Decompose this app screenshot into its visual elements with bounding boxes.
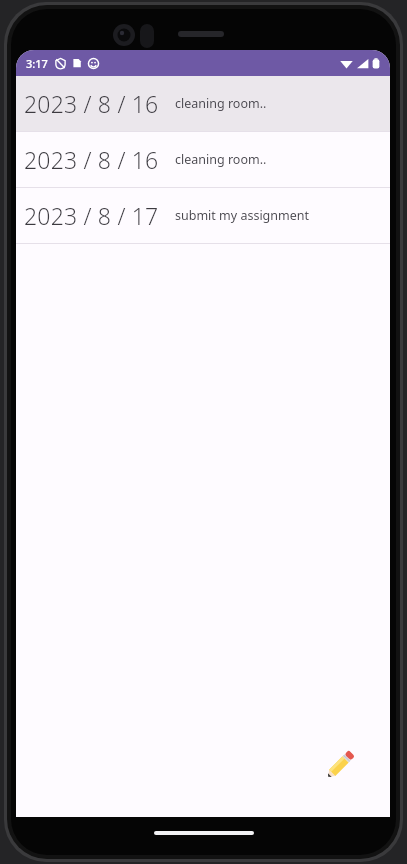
button[interactable]: 2023 / 8 / 17 bbox=[16, 188, 390, 243]
staticText: 2023 / 8 / 16 bbox=[24, 144, 159, 175]
staticText: 3:17 bbox=[26, 56, 48, 71]
button[interactable]: 2023 / 8 / 16 bbox=[16, 132, 390, 187]
staticText: cleaning room.. bbox=[175, 151, 267, 168]
staticText: 2023 / 8 / 17 bbox=[24, 200, 159, 231]
button[interactable]: Add memo bbox=[312, 737, 368, 793]
staticText: submit my assignment bbox=[175, 207, 309, 224]
staticText: 2023 / 8 / 16 bbox=[24, 88, 159, 119]
button[interactable]: 2023 / 8 / 16 bbox=[16, 76, 390, 131]
staticText: cleaning room.. bbox=[175, 95, 267, 112]
